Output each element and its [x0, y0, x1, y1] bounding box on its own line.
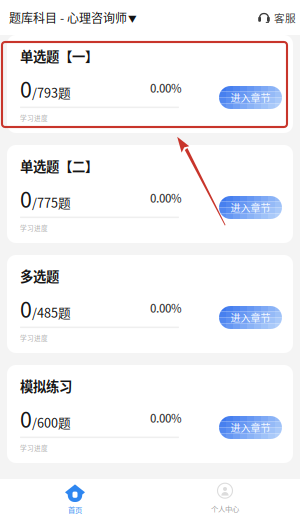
button[interactable]: 个人中心: [150, 479, 300, 518]
staticText: ▼: [128, 13, 137, 25]
staticText: 题库科目 - 心理咨询师: [9, 9, 127, 26]
staticText: 0: [20, 183, 32, 214]
staticText: 多选题: [20, 266, 59, 285]
staticText: 单选题【一】: [20, 46, 98, 65]
staticText: 客服: [274, 10, 296, 25]
button[interactable]: 单选题【二】: [7, 145, 293, 243]
staticText: 学习进度: [20, 333, 48, 343]
staticText: 首页: [68, 504, 82, 515]
staticText: /793题: [32, 83, 71, 101]
button[interactable]: 单选题【一】: [7, 35, 293, 133]
staticText: 进入章节: [230, 420, 270, 435]
staticText: 学习进度: [20, 443, 48, 453]
staticText: 进入章节: [230, 310, 270, 325]
staticText: 模拟练习: [20, 376, 72, 395]
staticText: 0.00%: [150, 189, 182, 206]
staticText: /775题: [32, 193, 71, 211]
staticText: 单选题【二】: [20, 156, 98, 175]
staticText: 进入章节: [230, 90, 270, 105]
staticText: /485题: [32, 303, 71, 321]
button[interactable]: 客服: [258, 1, 300, 34]
button[interactable]: 模拟练习: [7, 365, 293, 463]
button[interactable]: 多选题: [7, 255, 293, 353]
button[interactable]: 进入章节: [219, 416, 282, 439]
staticText: 0.00%: [150, 79, 182, 96]
staticText: /600题: [32, 413, 71, 431]
staticText: 学习进度: [20, 223, 48, 233]
staticText: 0.00%: [150, 299, 182, 316]
staticText: 学习进度: [20, 113, 48, 123]
staticText: 0: [20, 293, 32, 324]
button[interactable]: 进入章节: [219, 306, 282, 329]
staticText: 0: [20, 403, 32, 434]
button[interactable]: 进入章节: [219, 86, 282, 109]
staticText: 进入章节: [230, 200, 270, 215]
button[interactable]: 题库科目 - 心理咨询师: [0, 0, 137, 35]
button[interactable]: 首页: [0, 479, 150, 518]
staticText: 0: [20, 73, 32, 104]
button[interactable]: 进入章节: [219, 196, 282, 219]
staticText: 0.00%: [150, 409, 182, 426]
staticText: 个人中心: [211, 503, 239, 514]
